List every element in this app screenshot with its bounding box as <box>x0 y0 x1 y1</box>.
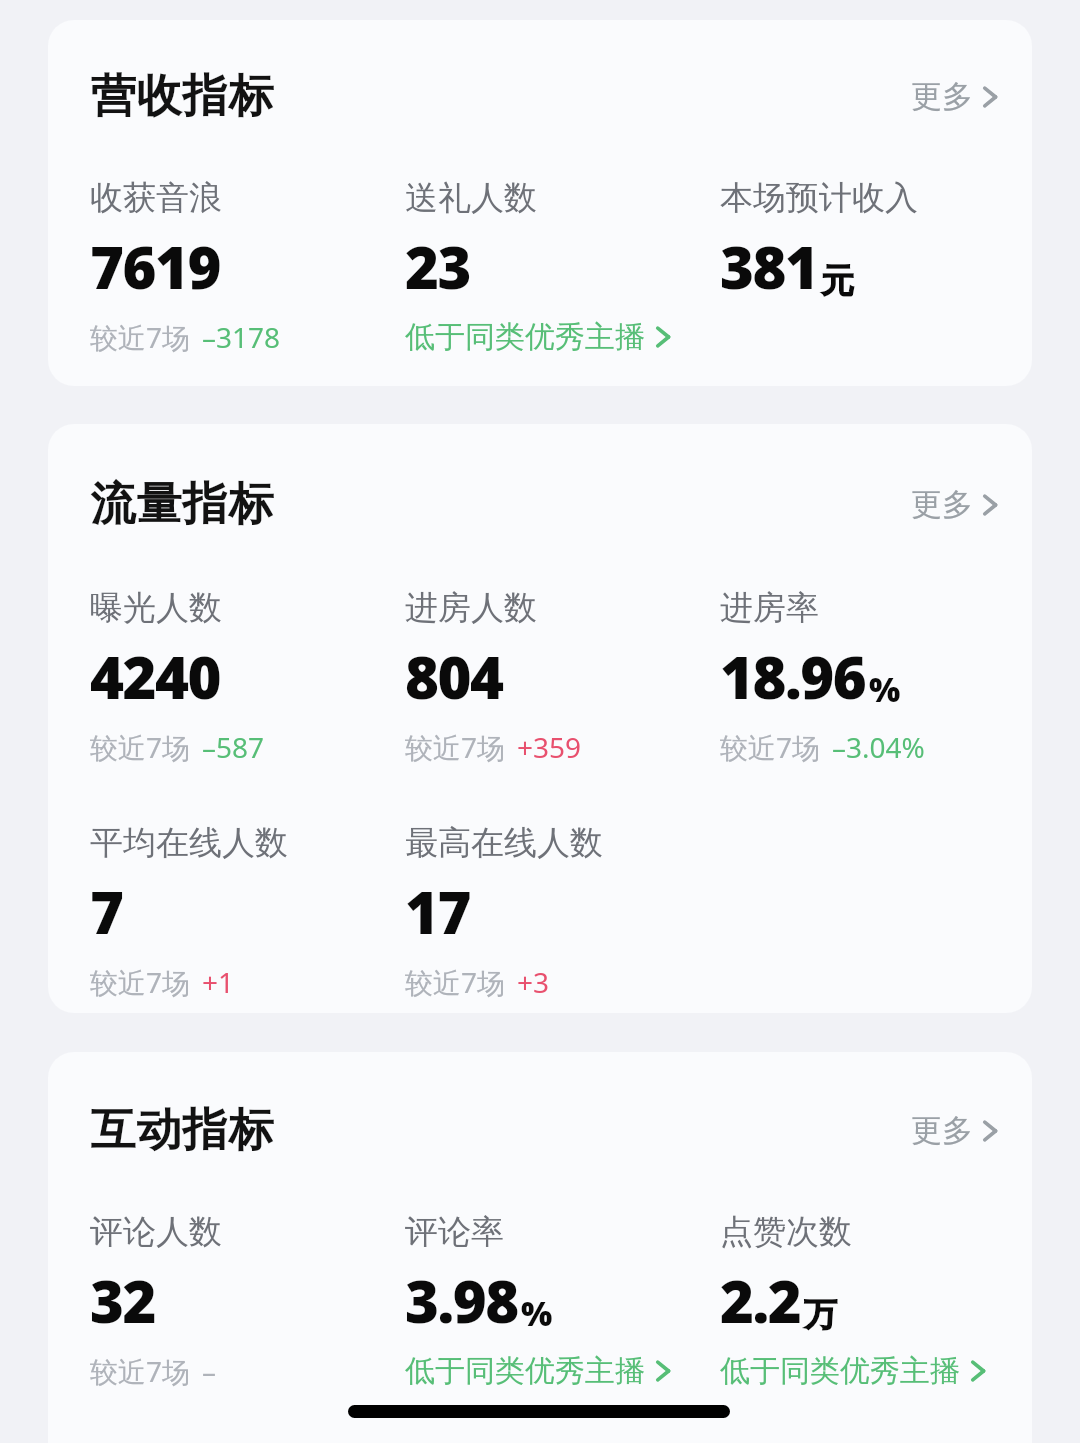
staticText: 较近7场 <box>90 318 191 356</box>
staticText: 2.2 <box>720 1261 801 1340</box>
staticText: 4240 <box>90 637 220 716</box>
staticText: 本场预计收入 <box>720 177 918 219</box>
staticText: +1 <box>202 963 235 1001</box>
staticText: 低于同类优秀主播 <box>720 1352 960 1390</box>
staticText: 3.98 <box>405 1261 518 1340</box>
button[interactable]: 更多 <box>905 1103 1004 1158</box>
staticText: 评论人数 <box>90 1211 222 1253</box>
staticText: 23 <box>405 227 470 306</box>
staticText: % <box>521 1291 553 1336</box>
staticText: 更多 <box>911 1111 973 1150</box>
staticText: +3 <box>517 963 550 1001</box>
staticText: 元 <box>821 260 854 302</box>
staticText: – <box>202 1352 217 1390</box>
staticText: –3.04% <box>832 728 925 766</box>
staticText: 7 <box>90 872 123 951</box>
staticText: 低于同类优秀主播 <box>405 318 645 356</box>
button[interactable]: 流量指标 <box>48 424 1032 1013</box>
button[interactable]: 营收指标 <box>48 20 1032 386</box>
staticText: 更多 <box>911 485 973 524</box>
button[interactable]: 更多 <box>905 477 1004 532</box>
button[interactable]: 低于同类优秀主播 <box>405 1352 671 1390</box>
staticText: 更多 <box>911 77 973 116</box>
staticText: 最高在线人数 <box>405 822 603 864</box>
staticText: 7619 <box>90 227 220 306</box>
staticText: 17 <box>405 872 470 951</box>
staticText: 评论率 <box>405 1211 504 1253</box>
staticText: 804 <box>405 637 503 716</box>
staticText: 点赞次数 <box>720 1211 852 1253</box>
staticText: % <box>869 667 901 712</box>
staticText: 较近7场 <box>405 963 506 1001</box>
staticText: +359 <box>517 728 582 766</box>
button[interactable]: 低于同类优秀主播 <box>405 318 671 356</box>
staticText: 互动指标 <box>90 1102 274 1159</box>
staticText: 进房人数 <box>405 587 537 629</box>
staticText: 较近7场 <box>405 728 506 766</box>
staticText: 万 <box>804 1294 837 1336</box>
button[interactable]: 更多 <box>905 69 1004 124</box>
staticText: 较近7场 <box>90 1352 191 1390</box>
staticText: 18.96 <box>720 637 866 716</box>
staticText: 营收指标 <box>90 68 274 125</box>
staticText: 平均在线人数 <box>90 822 288 864</box>
staticText: 进房率 <box>720 587 819 629</box>
staticText: –3178 <box>202 318 281 356</box>
staticText: 流量指标 <box>90 476 274 533</box>
staticText: 较近7场 <box>720 728 821 766</box>
staticText: 送礼人数 <box>405 177 537 219</box>
staticText: 较近7场 <box>90 963 191 1001</box>
staticText: 收获音浪 <box>90 177 222 219</box>
button[interactable]: 低于同类优秀主播 <box>720 1352 986 1390</box>
staticText: 32 <box>90 1261 155 1340</box>
button[interactable]: 互动指标 <box>48 1052 1032 1443</box>
staticText: 较近7场 <box>90 728 191 766</box>
staticText: 381 <box>720 227 818 306</box>
staticText: 低于同类优秀主播 <box>405 1352 645 1390</box>
staticText: –587 <box>202 728 265 766</box>
staticText: 曝光人数 <box>90 587 222 629</box>
